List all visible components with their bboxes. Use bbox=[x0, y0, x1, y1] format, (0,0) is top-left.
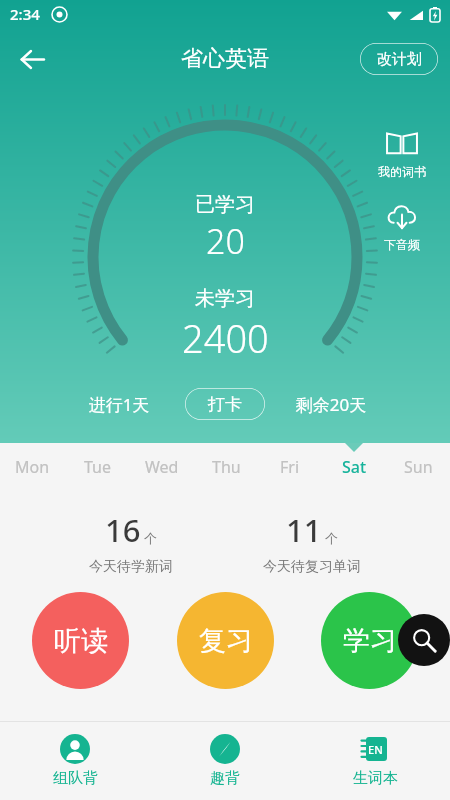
staticText: 改计划 bbox=[377, 50, 422, 69]
staticText: 趣背 bbox=[210, 769, 240, 788]
staticText: 省心英语 bbox=[181, 45, 269, 73]
button[interactable]: 复习 bbox=[177, 592, 274, 689]
button[interactable]: Sat bbox=[322, 443, 386, 491]
button[interactable]: Fri bbox=[258, 443, 322, 491]
button[interactable]: 趣背 bbox=[150, 722, 300, 800]
staticText: 已学习 bbox=[195, 192, 255, 217]
staticText: 11 bbox=[286, 509, 322, 551]
staticText: Fri bbox=[280, 456, 300, 478]
button[interactable]: EN bbox=[300, 722, 450, 800]
staticText: EN bbox=[368, 742, 383, 757]
staticText: 组队背 bbox=[53, 769, 98, 788]
button[interactable]: Search bbox=[398, 614, 450, 666]
button[interactable]: 听读 bbox=[32, 592, 129, 689]
button[interactable]: Sun bbox=[386, 443, 450, 491]
staticText: 个 bbox=[144, 530, 157, 546]
staticText: 今天待学新词 bbox=[89, 558, 173, 576]
staticText: Sat bbox=[342, 456, 367, 478]
staticText: 下音频 bbox=[384, 237, 420, 252]
button[interactable]: 我的词书 bbox=[366, 126, 438, 179]
staticText: 我的词书 bbox=[378, 164, 426, 179]
staticText: 进行1天 bbox=[53, 393, 185, 416]
staticText: 个 bbox=[325, 530, 338, 546]
button[interactable]: Mon bbox=[0, 443, 65, 491]
staticText: 学习 bbox=[343, 624, 397, 658]
staticText: 今天待复习单词 bbox=[263, 558, 361, 576]
button[interactable]: 改计划 bbox=[360, 43, 438, 75]
staticText: 20 bbox=[206, 218, 245, 264]
staticText: Mon bbox=[15, 456, 50, 478]
staticText: Tue bbox=[84, 456, 112, 478]
button[interactable]: 组队背 bbox=[0, 722, 150, 800]
button[interactable]: 下音频 bbox=[366, 201, 438, 252]
staticText: 听读 bbox=[54, 624, 108, 658]
staticText: 复习 bbox=[199, 624, 253, 658]
staticText: 生词本 bbox=[353, 769, 398, 788]
staticText: Wed bbox=[145, 456, 179, 478]
staticText: 2400 bbox=[182, 312, 269, 364]
staticText: 2:34 bbox=[10, 4, 40, 24]
button[interactable]: Thu bbox=[194, 443, 258, 491]
staticText: 剩余20天 bbox=[265, 393, 397, 416]
button[interactable]: Back bbox=[8, 35, 56, 83]
staticText: Thu bbox=[212, 456, 241, 478]
button[interactable]: Wed bbox=[130, 443, 194, 491]
button[interactable]: Tue bbox=[65, 443, 130, 491]
staticText: 16 bbox=[105, 509, 141, 551]
button[interactable]: 打卡 bbox=[185, 388, 265, 420]
staticText: 打卡 bbox=[208, 394, 242, 415]
button[interactable]: 学习 bbox=[321, 592, 418, 689]
staticText: Sun bbox=[404, 456, 433, 478]
staticText: 未学习 bbox=[195, 286, 255, 311]
